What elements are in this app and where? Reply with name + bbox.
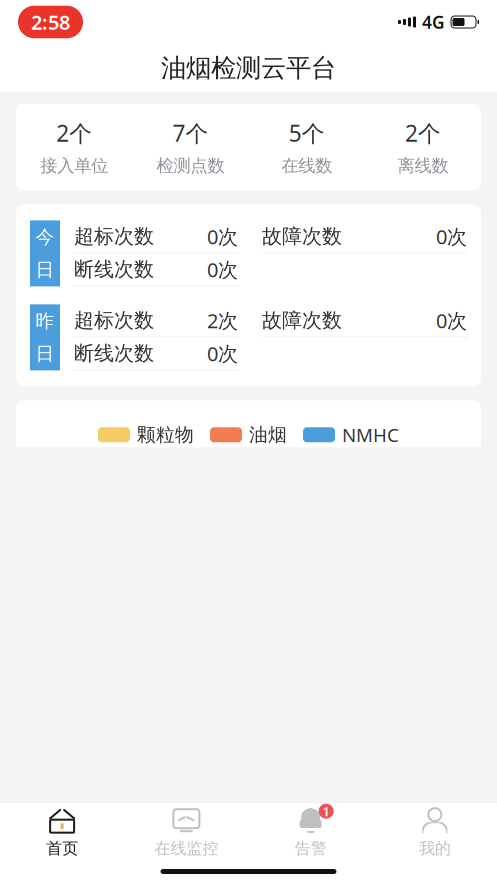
button[interactable]: 1 — [248, 802, 373, 858]
staticText: 5个 — [289, 118, 325, 148]
button[interactable]: 我的 — [373, 802, 497, 858]
staticText: 昨 — [35, 309, 54, 332]
staticText: 在线数 — [281, 155, 332, 176]
button[interactable]: 首页 — [0, 802, 124, 858]
staticText: 今 — [35, 225, 54, 248]
staticText: 故障次数 — [262, 308, 342, 333]
staticText: 日 — [35, 342, 54, 365]
button[interactable]: 在线监控 — [124, 802, 248, 858]
staticText: 油烟 — [249, 423, 287, 446]
staticText: 0次 — [436, 223, 467, 250]
staticText: 2个 — [56, 118, 92, 148]
staticText: 首页 — [46, 839, 78, 858]
staticText: 我的 — [419, 839, 451, 858]
staticText: 超标次数 — [74, 308, 154, 333]
staticText: 2次 — [207, 307, 238, 334]
staticText: 0次 — [436, 307, 467, 334]
staticText: 2:58 — [31, 9, 70, 35]
staticText: 告警 — [295, 839, 327, 858]
staticText: 断线次数 — [74, 341, 154, 366]
staticText: 0次 — [207, 223, 238, 250]
staticText: 在线监控 — [154, 839, 218, 858]
staticText: 日 — [35, 258, 54, 281]
staticText: 1 — [322, 802, 330, 820]
staticText: 颗粒物 — [137, 423, 194, 446]
staticText: 油烟检测云平台 — [161, 52, 336, 83]
staticText: 接入单位 — [40, 155, 108, 176]
staticText: 0次 — [207, 340, 238, 367]
staticText: NMHC — [342, 422, 399, 447]
staticText: 0次 — [207, 256, 238, 283]
staticText: 故障次数 — [262, 224, 342, 249]
staticText: 4G — [422, 10, 445, 33]
staticText: 离线数 — [397, 155, 448, 176]
staticText: 检测点数 — [156, 155, 224, 176]
staticText: 断线次数 — [74, 257, 154, 282]
staticText: 7个 — [172, 118, 208, 148]
staticText: 2个 — [405, 118, 441, 148]
staticText: 超标次数 — [74, 224, 154, 249]
